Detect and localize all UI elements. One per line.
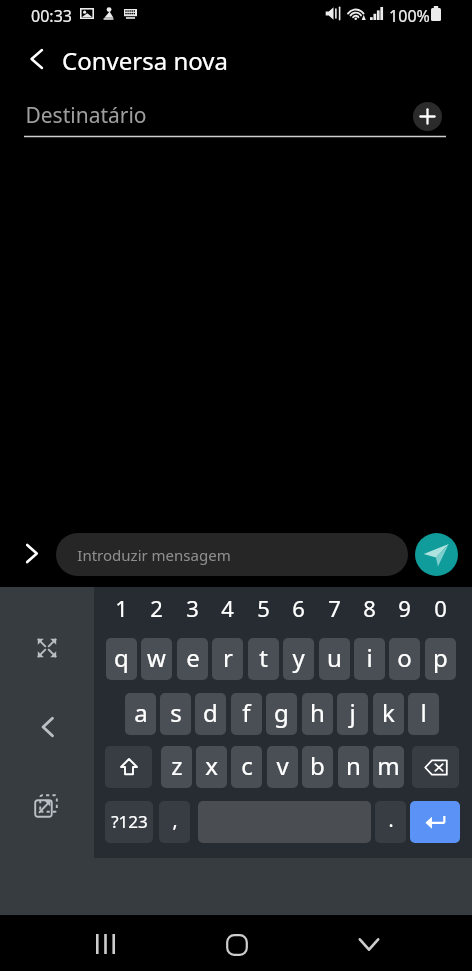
staticText: o	[397, 641, 412, 674]
staticText: ,	[172, 807, 178, 833]
staticText: b	[310, 749, 325, 782]
staticText: m	[377, 749, 400, 782]
staticText: k	[382, 696, 395, 729]
button[interactable]: c	[231, 746, 262, 788]
button[interactable]: Resize keyboard	[28, 629, 66, 667]
staticText: 5	[257, 593, 270, 623]
button[interactable]: b	[302, 746, 333, 788]
button[interactable]: i	[354, 638, 385, 680]
staticText: y	[292, 641, 305, 674]
staticText: 8	[363, 593, 376, 623]
button[interactable]: 7	[319, 589, 350, 627]
staticText: ?123	[111, 810, 148, 833]
button[interactable]: Floating keyboard	[27, 787, 65, 825]
button[interactable]: t	[248, 638, 279, 680]
button[interactable]: f	[231, 693, 262, 735]
button[interactable]: Recents	[75, 925, 135, 963]
staticText: 100%	[389, 5, 430, 27]
button[interactable]: Back	[19, 41, 54, 76]
button[interactable]: Hide keyboard	[339, 925, 399, 963]
button[interactable]: g	[266, 693, 297, 735]
button[interactable]: j	[337, 693, 368, 735]
staticText: u	[327, 641, 342, 674]
staticText: 6	[292, 593, 305, 623]
button[interactable]: ,	[159, 801, 190, 843]
button[interactable]: Home	[207, 926, 267, 964]
staticText: 3	[186, 593, 199, 623]
button[interactable]: n	[338, 746, 369, 788]
button[interactable]: a	[125, 693, 156, 735]
staticText: 2	[150, 593, 163, 623]
button[interactable]: 0	[425, 589, 456, 627]
button[interactable]: z	[161, 746, 192, 788]
button[interactable]: 8	[354, 589, 385, 627]
staticText: 00:33	[31, 5, 72, 27]
staticText: l	[420, 696, 427, 729]
staticText: i	[366, 641, 373, 674]
staticText: p	[433, 641, 448, 674]
button[interactable]: 6	[283, 589, 314, 627]
button[interactable]: h	[302, 693, 333, 735]
staticText: 7	[328, 593, 341, 623]
button[interactable]	[105, 746, 152, 788]
button[interactable]: Previous	[28, 708, 66, 746]
staticText: Introduzir mensagem	[77, 545, 231, 565]
staticText: 4	[221, 593, 234, 623]
staticText: 9	[398, 593, 411, 623]
staticText: q	[114, 641, 129, 674]
button[interactable]: q	[106, 638, 137, 680]
staticText: d	[203, 696, 218, 729]
button[interactable]: l	[408, 693, 439, 735]
button[interactable]: Add recipient	[413, 102, 442, 131]
button[interactable]: Send	[415, 533, 458, 576]
button[interactable]: 1	[106, 589, 137, 627]
staticText: 0	[434, 593, 447, 623]
button[interactable]: w	[141, 638, 172, 680]
staticText: f	[242, 696, 251, 729]
staticText: Conversa nova	[62, 44, 228, 77]
button[interactable]: r	[212, 638, 243, 680]
button[interactable]: ?123	[105, 801, 153, 843]
staticText: t	[259, 641, 268, 674]
button[interactable]: y	[283, 638, 314, 680]
button[interactable]	[412, 746, 459, 788]
staticText: z	[171, 749, 183, 782]
staticText: w	[147, 641, 166, 674]
button[interactable]: .	[375, 801, 406, 843]
staticText: j	[349, 696, 356, 729]
button[interactable]: o	[389, 638, 420, 680]
button[interactable]: Introduzir mensagem	[56, 533, 408, 576]
button[interactable]	[410, 801, 460, 843]
staticText: e	[186, 641, 200, 674]
button[interactable]: d	[195, 693, 226, 735]
staticText: .	[388, 807, 394, 833]
staticText: v	[276, 749, 289, 782]
staticText: g	[274, 696, 289, 729]
button[interactable]: 5	[248, 589, 279, 627]
staticText: s	[170, 696, 182, 729]
button[interactable]: m	[373, 746, 404, 788]
staticText: Destinatário	[25, 101, 147, 130]
staticText: r	[223, 641, 233, 674]
button[interactable]: 2	[141, 589, 172, 627]
button[interactable]: Expand options	[13, 534, 51, 572]
button[interactable]: x	[196, 746, 227, 788]
button[interactable]: p	[425, 638, 456, 680]
button[interactable]: 9	[389, 589, 420, 627]
staticText: n	[346, 749, 361, 782]
staticText: c	[241, 749, 253, 782]
button[interactable]: e	[177, 638, 208, 680]
staticText: x	[205, 749, 218, 782]
button[interactable]: 3	[177, 589, 208, 627]
button[interactable]: 4	[212, 589, 243, 627]
staticText: 1	[115, 593, 128, 623]
button[interactable]: u	[319, 638, 350, 680]
button[interactable]: k	[373, 693, 404, 735]
button[interactable]: s	[160, 693, 191, 735]
button[interactable]: v	[267, 746, 298, 788]
staticText: a	[134, 696, 148, 729]
staticText: h	[310, 696, 325, 729]
